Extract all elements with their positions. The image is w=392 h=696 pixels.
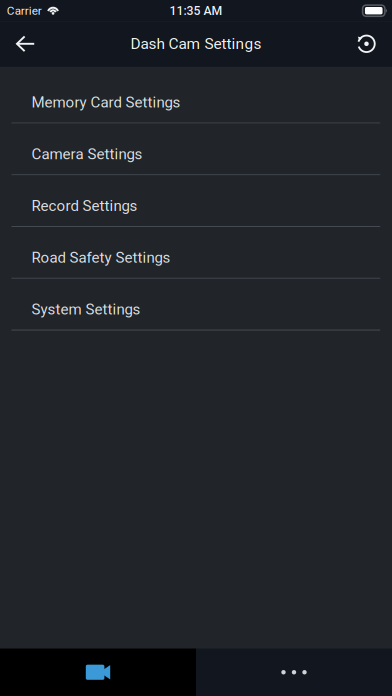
button[interactable]: Memory Card Settings [0,72,392,124]
button[interactable]: Back [3,21,47,66]
staticText: System Settings [32,300,141,318]
staticText: Camera Settings [32,145,143,163]
button[interactable]: Record Settings [0,175,392,227]
button[interactable]: System Settings [0,279,392,331]
staticText: Memory Card Settings [32,93,181,111]
button[interactable]: Record [0,648,196,696]
button[interactable]: Restore defaults [344,21,388,66]
staticText: Record Settings [32,197,138,215]
staticText: 11:35 AM [169,3,222,18]
staticText: Carrier [7,4,42,18]
button[interactable]: Camera Settings [0,123,392,175]
button[interactable]: Road Safety Settings [0,227,392,279]
button[interactable]: More [196,648,392,696]
staticText: Dash Cam Settings [130,35,261,53]
staticText: Road Safety Settings [32,249,171,266]
